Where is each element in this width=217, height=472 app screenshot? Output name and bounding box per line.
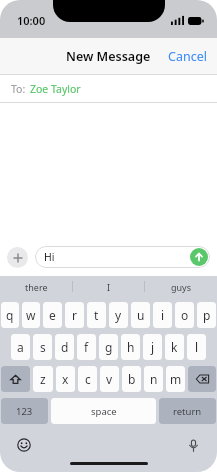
button[interactable]: i xyxy=(153,302,172,328)
staticText: q xyxy=(6,307,14,323)
staticText: guys xyxy=(171,281,191,293)
staticText: z xyxy=(40,371,46,387)
staticText: g xyxy=(105,339,113,355)
staticText: k xyxy=(171,339,178,355)
button[interactable]: v xyxy=(100,366,119,392)
staticText: e xyxy=(49,307,56,323)
button[interactable]: Backspace xyxy=(188,366,216,392)
button[interactable]: Cancel xyxy=(158,41,217,72)
staticText: c xyxy=(85,371,91,387)
button[interactable]: n xyxy=(144,366,163,392)
staticText: v xyxy=(106,371,113,387)
button[interactable]: w xyxy=(22,302,40,328)
button[interactable]: k xyxy=(165,334,184,360)
staticText: Cancel xyxy=(168,48,207,65)
button[interactable]: 123 xyxy=(1,398,48,424)
button[interactable]: q xyxy=(1,302,19,328)
staticText: there xyxy=(25,281,48,293)
button[interactable]: s xyxy=(33,334,52,360)
button[interactable]: Send xyxy=(190,248,208,266)
button[interactable]: u xyxy=(131,302,150,328)
staticText: s xyxy=(40,339,46,355)
button[interactable]: return xyxy=(159,398,216,424)
button[interactable]: Dictation xyxy=(183,435,203,455)
button[interactable]: t xyxy=(87,302,106,328)
staticText: New Message xyxy=(66,48,151,65)
staticText: I xyxy=(107,281,111,293)
button[interactable]: c xyxy=(78,366,97,392)
button[interactable]: space xyxy=(51,398,156,424)
staticText: o xyxy=(181,307,189,323)
staticText: y xyxy=(115,307,122,323)
button[interactable]: Hi xyxy=(35,246,210,268)
button[interactable]: l xyxy=(187,334,206,360)
staticText: r xyxy=(72,307,77,323)
staticText: t xyxy=(94,307,99,323)
staticText: l xyxy=(195,339,199,355)
button[interactable]: o xyxy=(175,302,194,328)
staticText: n xyxy=(150,371,158,387)
button[interactable]: y xyxy=(109,302,128,328)
button[interactable]: h xyxy=(121,334,140,360)
staticText: b xyxy=(128,371,136,387)
staticText: m xyxy=(170,371,182,387)
staticText: 10:00 xyxy=(17,13,46,28)
button[interactable]: Add attachment xyxy=(7,247,28,268)
button[interactable]: z xyxy=(33,366,53,392)
staticText: x xyxy=(62,371,69,387)
staticText: h xyxy=(127,339,135,355)
button[interactable]: g xyxy=(99,334,118,360)
button[interactable]: r xyxy=(65,302,84,328)
staticText: i xyxy=(161,307,165,323)
button[interactable]: Emoji xyxy=(14,435,34,455)
staticText: To: xyxy=(11,82,26,96)
button[interactable]: To: xyxy=(0,75,217,102)
button[interactable]: j xyxy=(143,334,162,360)
staticText: 123 xyxy=(16,405,33,418)
staticText: u xyxy=(137,307,145,323)
button[interactable]: e xyxy=(43,302,62,328)
button[interactable]: m xyxy=(166,366,185,392)
button[interactable]: f xyxy=(77,334,96,360)
button[interactable]: Shift xyxy=(1,366,30,392)
staticText: a xyxy=(17,339,24,355)
staticText: f xyxy=(84,339,89,355)
staticText: w xyxy=(26,307,36,323)
staticText: j xyxy=(151,339,155,355)
button[interactable]: I xyxy=(73,276,145,297)
staticText: d xyxy=(61,339,69,355)
staticText: Hi xyxy=(44,250,55,264)
button[interactable]: there xyxy=(0,276,73,297)
staticText: space xyxy=(91,405,117,418)
staticText: p xyxy=(203,307,211,323)
button[interactable]: a xyxy=(11,334,30,360)
button[interactable]: p xyxy=(197,302,216,328)
button[interactable]: guys xyxy=(145,276,217,297)
button[interactable]: d xyxy=(55,334,74,360)
button[interactable]: x xyxy=(56,366,75,392)
staticText: return xyxy=(173,405,202,418)
button[interactable]: b xyxy=(122,366,141,392)
staticText: Zoe Taylor xyxy=(30,82,81,96)
